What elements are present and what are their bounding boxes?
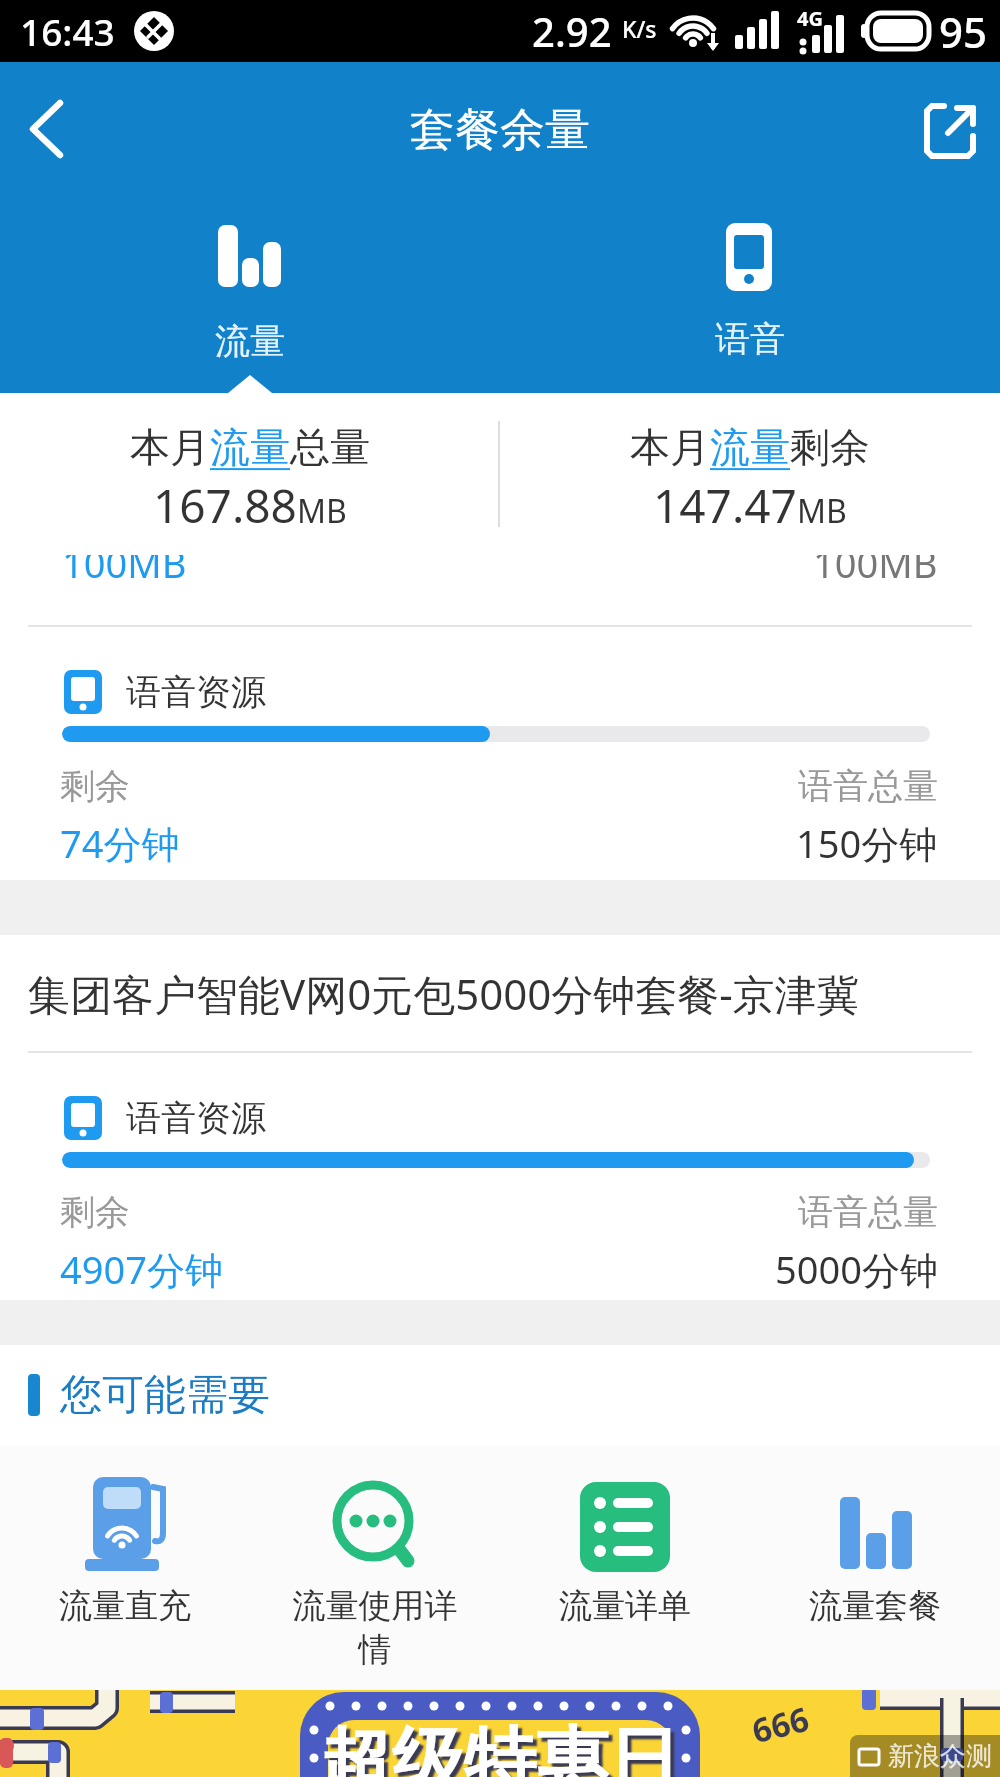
staticText: 集团客户智能V网0元包5000分钟套餐-京津冀 xyxy=(28,965,859,1022)
staticText: 74分钟 xyxy=(60,817,180,869)
button[interactable]: 超级特惠日 xyxy=(0,1690,1000,1777)
staticText: 167.88MB xyxy=(153,474,347,537)
button[interactable] xyxy=(924,103,976,157)
staticText: 套餐余量 xyxy=(410,102,590,159)
button[interactable]: 流量套餐 xyxy=(750,1445,1000,1690)
staticText: 剩余 xyxy=(60,1190,130,1234)
staticText: 16:43 xyxy=(20,6,115,56)
button[interactable]: 流量直充 xyxy=(0,1445,250,1690)
staticText: 4907分钟 xyxy=(60,1243,223,1295)
button[interactable] xyxy=(30,101,64,159)
staticText: 4G xyxy=(797,5,823,32)
button[interactable]: 流量 xyxy=(0,198,500,363)
staticText: 超级特惠日 xyxy=(320,1717,680,1777)
staticText: 流量 xyxy=(215,319,285,363)
staticText: 2.92 K/s xyxy=(532,4,657,58)
staticText: 666 xyxy=(747,1696,814,1753)
staticText: 95 xyxy=(939,3,988,60)
button[interactable]: 语音 xyxy=(500,198,1000,361)
staticText: 流量使用详情 xyxy=(289,1585,461,1671)
staticText: 流量套餐 xyxy=(789,1585,961,1627)
staticText: 本月流量总量 xyxy=(130,422,370,472)
staticText: 流量详单 xyxy=(539,1585,711,1627)
staticText: 语音 xyxy=(715,317,785,361)
staticText: 147.47MB xyxy=(653,474,847,537)
staticText: 语音资源 xyxy=(126,1096,266,1140)
staticText: 语音总量 xyxy=(798,1190,938,1234)
staticText: 150分钟 xyxy=(796,817,938,869)
staticText: 流量直充 xyxy=(39,1585,211,1627)
button[interactable]: 流量详单 xyxy=(500,1445,750,1690)
staticText: 新浪众测 xyxy=(888,1740,992,1773)
staticText: 语音资源 xyxy=(126,670,266,714)
staticText: 您可能需要 xyxy=(60,1369,270,1422)
staticText: 剩余 xyxy=(60,764,130,808)
button[interactable]: 流量使用详情 xyxy=(250,1445,500,1690)
staticText: 100MB xyxy=(62,555,187,582)
staticText: 100MB xyxy=(813,555,938,582)
staticText: 5000分钟 xyxy=(775,1243,938,1295)
staticText: 语音总量 xyxy=(798,764,938,808)
staticText: 本月流量剩余 xyxy=(630,422,870,472)
